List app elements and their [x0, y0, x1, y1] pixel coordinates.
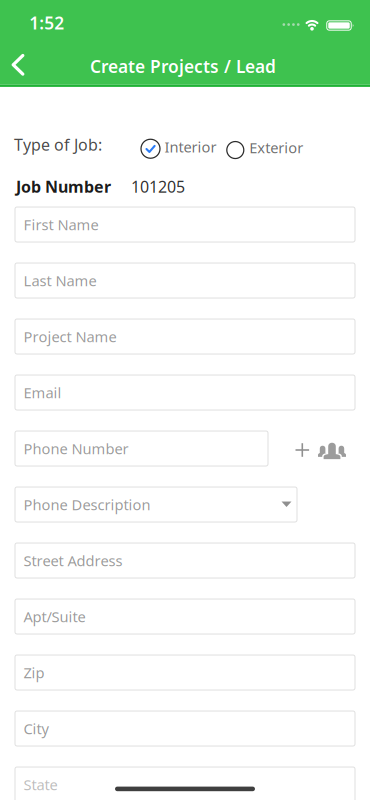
button[interactable]: First Name [15, 207, 355, 242]
button[interactable]: Phone Description [15, 487, 297, 522]
button[interactable]: Last Name [15, 263, 355, 298]
staticText: Project Name [23, 327, 116, 346]
staticText: Type of Job: [14, 134, 102, 155]
staticText: State [23, 775, 57, 794]
button[interactable]: City [15, 711, 355, 746]
button[interactable]: Contacts [318, 441, 346, 459]
button[interactable]: Add phone number [295, 443, 309, 457]
button[interactable]: Zip [15, 655, 355, 690]
staticText: Phone Description [23, 495, 150, 514]
staticText: Job Number [16, 176, 111, 197]
staticText: 1:52 [29, 11, 64, 34]
button[interactable]: Email [15, 375, 355, 410]
staticText: Street Address [23, 551, 122, 570]
staticText: Email [23, 383, 61, 402]
staticText: 101205 [131, 176, 185, 197]
button[interactable]: Interior [141, 139, 216, 158]
button[interactable]: State [15, 767, 355, 800]
button[interactable]: Exterior [227, 140, 303, 160]
staticText: Zip [23, 663, 44, 682]
button[interactable]: Project Name [15, 319, 355, 354]
button[interactable]: Street Address [15, 543, 355, 578]
button[interactable]: Phone Number [15, 431, 268, 466]
staticText: Interior [164, 137, 216, 156]
staticText: City [23, 719, 48, 738]
staticText: Phone Number [23, 439, 128, 458]
staticText: Exterior [249, 138, 303, 157]
staticText: First Name [23, 215, 98, 234]
button[interactable]: Back [2, 45, 42, 85]
staticText: Last Name [23, 271, 96, 290]
staticText: Apt/Suite [23, 607, 85, 626]
staticText: Create Projects / Lead [90, 55, 276, 78]
button[interactable]: Apt/Suite [15, 599, 355, 634]
